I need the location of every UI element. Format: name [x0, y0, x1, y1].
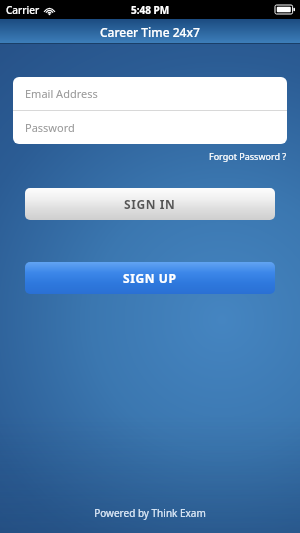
staticText: SIGN IN [124, 196, 176, 212]
button[interactable]: SIGN IN [25, 188, 275, 220]
staticText: Password [25, 120, 75, 135]
staticText: Career Time 24x7 [100, 24, 200, 40]
button[interactable]: SIGN UP [25, 262, 275, 294]
button[interactable]: Forgot Password ? [207, 148, 289, 164]
button[interactable]: Password [13, 111, 287, 144]
staticText: SIGN UP [123, 270, 177, 286]
staticText: Carrier [6, 3, 40, 17]
staticText: Forgot Password ? [209, 150, 287, 162]
staticText: Powered by Think Exam [94, 506, 206, 520]
other: Battery [275, 5, 295, 14]
staticText: Email Address [25, 86, 98, 101]
other: Wi-Fi signal [44, 6, 55, 15]
staticText: 5:48 PM [131, 3, 170, 17]
button[interactable]: Email Address [13, 77, 287, 110]
